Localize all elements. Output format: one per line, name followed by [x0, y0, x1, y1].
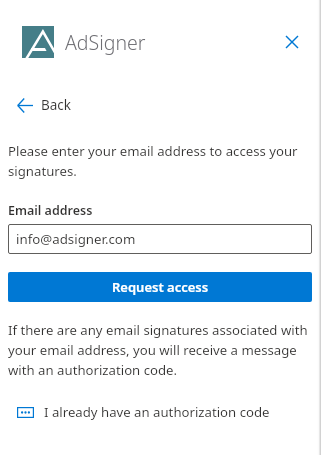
staticText: AdSigner — [65, 29, 146, 56]
staticText: Please enter your email address to acces… — [8, 142, 312, 180]
staticText: I already have an authorization code — [44, 403, 270, 421]
staticText: Request access — [112, 278, 209, 296]
button[interactable]: Close — [275, 25, 309, 59]
button[interactable]: Back — [17, 93, 72, 117]
staticText: info@adsigner.com — [16, 230, 136, 248]
staticText: Email address — [8, 202, 93, 219]
staticText: Back — [41, 96, 72, 114]
button[interactable]: Request access — [8, 272, 312, 302]
staticText: If there are any email signatures associ… — [8, 321, 312, 379]
button[interactable]: I already have an authorization code — [14, 401, 270, 423]
